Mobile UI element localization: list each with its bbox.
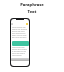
staticText: Paraphrase Text <box>20 2 44 15</box>
button[interactable]: Paraphrase <box>12 41 29 46</box>
staticText: Writing assistant that rewrites your sen… <box>12 27 28 39</box>
staticText: Paraphrased output appears right here wi… <box>12 47 28 57</box>
button[interactable]: Input field <box>11 58 29 61</box>
